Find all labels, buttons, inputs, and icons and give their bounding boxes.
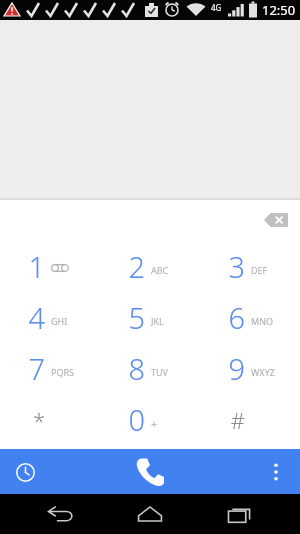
- staticText: TUV: [151, 366, 168, 378]
- button[interactable]: Back: [32, 494, 90, 534]
- button[interactable]: 3: [200, 240, 300, 292]
- button[interactable]: 0: [100, 394, 200, 445]
- staticText: *: [32, 405, 45, 435]
- staticText: ABC: [151, 264, 169, 276]
- staticText: #: [230, 405, 245, 435]
- staticText: 2: [128, 247, 145, 286]
- staticText: JKL: [151, 315, 164, 327]
- button[interactable]: 2: [100, 240, 200, 292]
- button[interactable]: 4: [0, 292, 100, 343]
- staticText: 8: [128, 349, 145, 388]
- staticText: 6: [228, 298, 245, 337]
- button[interactable]: #: [200, 394, 300, 445]
- button[interactable]: Backspace: [258, 205, 294, 235]
- button[interactable]: 6: [200, 292, 300, 343]
- button[interactable]: Recent apps: [211, 494, 269, 534]
- staticText: DEF: [251, 264, 268, 276]
- button[interactable]: Call: [124, 449, 176, 494]
- button[interactable]: Call history: [8, 455, 42, 489]
- staticText: 5: [128, 298, 145, 337]
- button[interactable]: 1: [0, 240, 100, 292]
- staticText: PQRS: [51, 366, 75, 378]
- button[interactable]: 8: [100, 343, 200, 394]
- button[interactable]: 7: [0, 343, 100, 394]
- staticText: 7: [28, 349, 45, 388]
- button[interactable]: More options: [260, 456, 292, 488]
- staticText: +: [151, 416, 158, 431]
- staticText: 4G: [211, 2, 222, 13]
- staticText: 0: [128, 400, 145, 439]
- button[interactable]: *: [0, 394, 100, 445]
- button[interactable]: 5: [100, 292, 200, 343]
- staticText: 12:50: [262, 1, 296, 19]
- staticText: 4: [28, 298, 45, 337]
- staticText: 3: [228, 247, 245, 286]
- button[interactable]: 9: [200, 343, 300, 394]
- staticText: 9: [228, 349, 245, 388]
- staticText: WXYZ: [251, 366, 275, 378]
- staticText: MNO: [251, 315, 274, 327]
- staticText: GHI: [51, 315, 68, 327]
- staticText: 1: [28, 247, 45, 286]
- button[interactable]: Home: [121, 494, 179, 534]
